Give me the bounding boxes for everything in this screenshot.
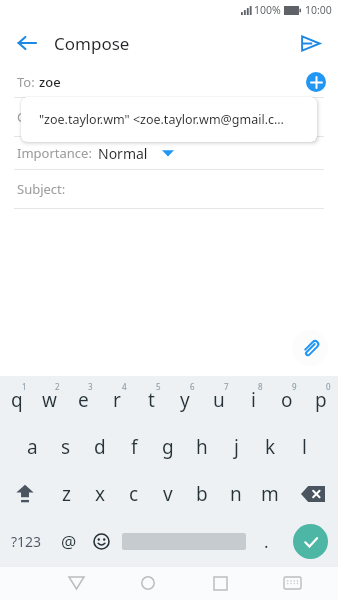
- staticText: c: [129, 481, 139, 507]
- button[interactable]: g: [151, 423, 185, 470]
- staticText: Importance:: [17, 144, 92, 162]
- button[interactable]: t: [134, 376, 168, 423]
- staticText: g: [162, 434, 174, 460]
- staticText: f: [131, 434, 138, 460]
- button[interactable]: f: [117, 423, 151, 470]
- staticText: m: [261, 481, 279, 507]
- button[interactable]: .: [250, 517, 283, 566]
- button[interactable]: l: [287, 423, 321, 470]
- button[interactable]: @: [52, 517, 85, 566]
- button[interactable]: b: [185, 470, 219, 517]
- button[interactable]: "zoe.taylor.wm" <zoe.taylor.wm@gmail.c…: [21, 97, 317, 142]
- staticText: d: [94, 434, 106, 460]
- button[interactable]: Emoji: [85, 517, 118, 566]
- staticText: "zoe.taylor.wm" <zoe.taylor.wm@gmail.c…: [39, 111, 284, 128]
- button[interactable]: k: [253, 423, 287, 470]
- staticText: 5: [156, 381, 161, 392]
- button[interactable]: Back: [59, 566, 93, 600]
- button[interactable]: y: [168, 376, 202, 423]
- button[interactable]: To:: [0, 66, 338, 97]
- button[interactable]: n: [219, 470, 253, 517]
- button[interactable]: p: [304, 376, 338, 423]
- button[interactable]: ?123: [0, 517, 52, 566]
- staticText: ?123: [11, 532, 42, 551]
- staticText: 0: [326, 381, 331, 392]
- staticText: .: [264, 530, 269, 553]
- staticText: u: [213, 387, 225, 413]
- button[interactable]: h: [185, 423, 219, 470]
- button[interactable]: Back: [8, 24, 46, 62]
- staticText: Cc:: [17, 108, 35, 126]
- staticText: r: [113, 387, 121, 413]
- staticText: z: [62, 481, 71, 507]
- button[interactable]: o: [270, 376, 304, 423]
- staticText: 100%: [254, 3, 281, 17]
- staticText: @: [61, 530, 77, 553]
- staticText: 6: [190, 381, 195, 392]
- button[interactable]: v: [151, 470, 185, 517]
- staticText: 7: [224, 381, 229, 392]
- button[interactable]: u: [202, 376, 236, 423]
- staticText: Subject:: [17, 180, 66, 198]
- staticText: Normal: [98, 144, 148, 163]
- button[interactable]: x: [83, 470, 117, 517]
- staticText: v: [163, 481, 173, 507]
- button[interactable]: Backspace: [287, 470, 338, 517]
- button[interactable]: q: [0, 376, 33, 423]
- button[interactable]: Attach file: [292, 330, 328, 366]
- staticText: t: [148, 387, 155, 413]
- staticText: w: [42, 387, 57, 413]
- button[interactable]: Enter: [283, 517, 338, 566]
- staticText: l: [302, 434, 307, 460]
- button[interactable]: m: [253, 470, 287, 517]
- button[interactable]: c: [117, 470, 151, 517]
- staticText: j: [234, 434, 239, 460]
- button[interactable]: Subject:: [0, 170, 338, 208]
- button[interactable]: s: [49, 423, 83, 470]
- staticText: 2: [55, 381, 60, 392]
- button[interactable]: Recents: [203, 566, 237, 600]
- staticText: e: [78, 387, 89, 413]
- staticText: p: [315, 387, 327, 413]
- staticText: 10:00: [305, 3, 332, 17]
- staticText: y: [180, 387, 190, 413]
- button[interactable]: Hide keyboard: [275, 566, 309, 600]
- staticText: 8: [258, 381, 263, 392]
- staticText: To:: [17, 73, 35, 91]
- staticText: Compose: [54, 32, 130, 55]
- button[interactable]: Space: [118, 517, 250, 566]
- button[interactable]: w: [33, 376, 66, 423]
- button[interactable]: r: [100, 376, 134, 423]
- staticText: a: [27, 434, 38, 460]
- button[interactable]: Shift: [0, 470, 50, 517]
- button[interactable]: z: [50, 470, 83, 517]
- staticText: h: [196, 434, 208, 460]
- staticText: b: [196, 481, 208, 507]
- staticText: s: [61, 434, 71, 460]
- button[interactable]: e: [66, 376, 100, 423]
- staticText: 4: [122, 381, 127, 392]
- staticText: x: [95, 481, 106, 507]
- button[interactable]: j: [219, 423, 253, 470]
- staticText: q: [11, 387, 23, 413]
- staticText: 9: [292, 381, 297, 392]
- button[interactable]: Send: [290, 23, 330, 63]
- staticText: 3: [88, 381, 93, 392]
- button[interactable]: Importance:: [0, 137, 338, 169]
- button[interactable]: i: [236, 376, 270, 423]
- button[interactable]: Cc:: [0, 98, 338, 136]
- button[interactable]: Home: [131, 566, 165, 600]
- button[interactable]: Add recipient: [306, 72, 326, 92]
- staticText: i: [251, 387, 256, 413]
- button[interactable]: d: [83, 423, 117, 470]
- staticText: k: [265, 434, 276, 460]
- staticText: zoe: [39, 73, 61, 91]
- staticText: o: [281, 387, 293, 413]
- staticText: n: [230, 481, 242, 507]
- button[interactable]: a: [16, 423, 49, 470]
- staticText: 1: [22, 381, 27, 392]
